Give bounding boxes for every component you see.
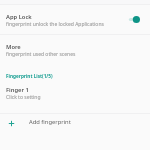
staticText: Add fingerprint <box>29 118 71 126</box>
staticText: Fingerprint List(1/5) <box>6 73 53 79</box>
button[interactable]: Finger 1 <box>0 84 150 113</box>
button[interactable]: App Lock toggle <box>128 15 142 24</box>
staticText: App Lock <box>6 13 32 21</box>
button[interactable]: App Lock <box>0 5 150 34</box>
staticText: fingerprint unlock the locked Applicatio… <box>6 21 104 28</box>
staticText: Click to setting <box>6 94 41 101</box>
staticText: fingerprint used other scenes <box>6 51 76 58</box>
button[interactable]: Add fingerprint <box>0 114 150 133</box>
staticText: Finger 1 <box>6 86 29 94</box>
staticText: More <box>6 43 21 51</box>
button[interactable]: More <box>0 35 150 63</box>
